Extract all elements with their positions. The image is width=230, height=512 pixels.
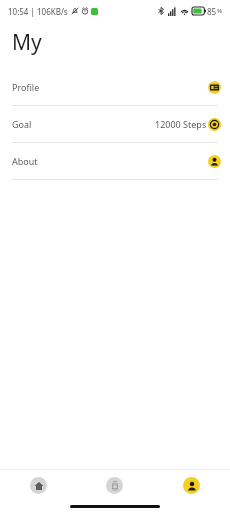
button[interactable]: Profile — [0, 69, 230, 105]
button[interactable]: About — [0, 143, 230, 179]
staticText: % — [217, 7, 222, 15]
staticText: 85 — [207, 6, 217, 17]
staticText: My — [12, 28, 42, 57]
staticText: About — [12, 155, 38, 167]
button[interactable]: Profile — [153, 470, 230, 500]
staticText: Profile — [12, 81, 40, 93]
button[interactable]: Activity — [76, 470, 153, 500]
staticText: 10:54 | 106KB/s — [8, 6, 68, 17]
staticText: 12000 Steps — [155, 118, 207, 130]
button[interactable]: Goal — [0, 106, 230, 142]
staticText: Goal — [12, 118, 32, 130]
button[interactable]: Home — [0, 470, 76, 500]
